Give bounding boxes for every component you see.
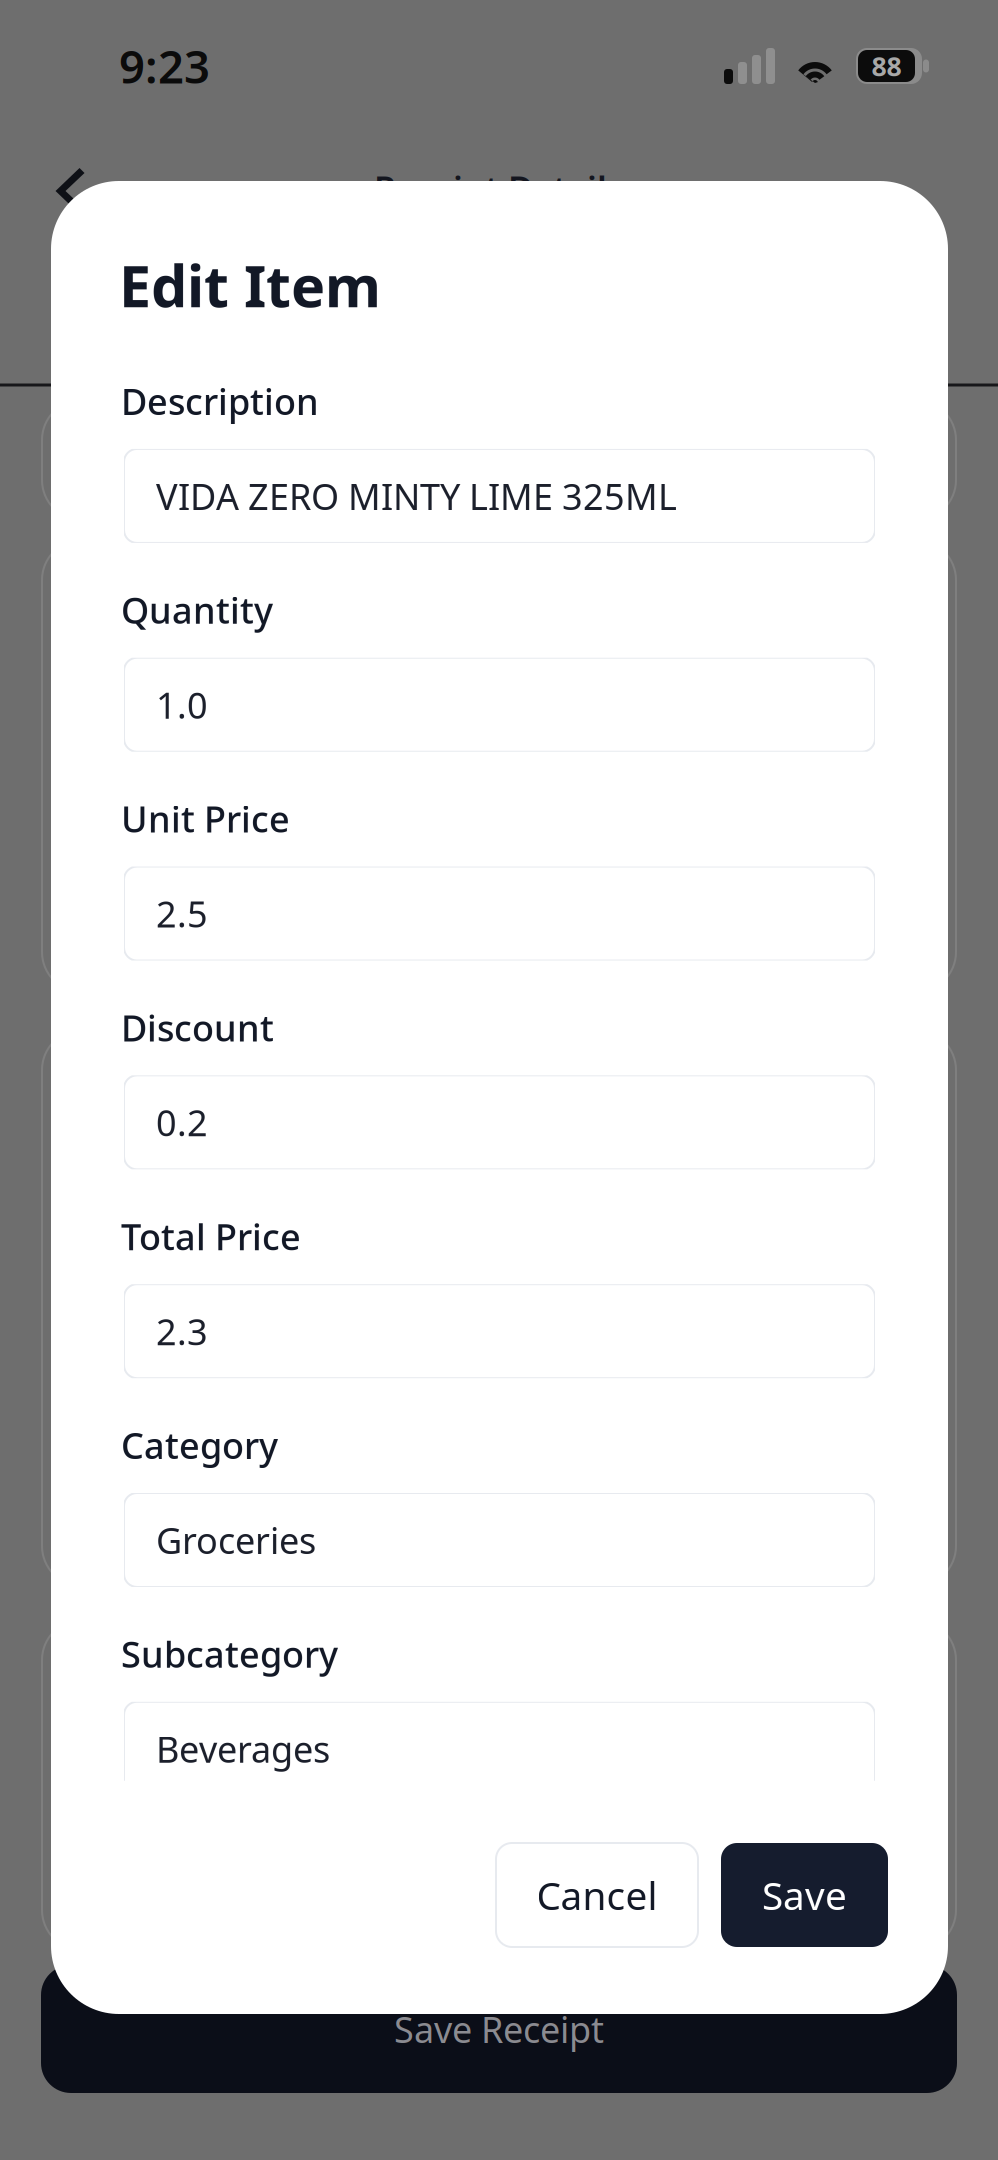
staticText: Beverages	[156, 1725, 330, 1773]
button[interactable]: Save	[721, 1843, 888, 1947]
staticText: Save Receipt	[394, 2005, 604, 2053]
staticText: Unit Price	[121, 795, 290, 842]
staticText: VIDA ZERO MINTY LIME 325ML	[156, 472, 677, 520]
staticText: Receipt Details	[374, 165, 624, 211]
staticText: 9:23	[119, 36, 210, 96]
button[interactable]: Back	[30, 151, 110, 231]
staticText: Subcategory	[121, 1630, 338, 1678]
staticText: Discount	[121, 1004, 274, 1051]
staticText: Description	[121, 377, 319, 425]
staticText: 2.3	[156, 1307, 208, 1355]
staticText: Category	[121, 1421, 278, 1469]
staticText: Cancel	[536, 1869, 657, 1921]
staticText: Save	[762, 1869, 847, 1921]
staticText: Edit Item	[119, 247, 381, 323]
staticText: 2.5	[156, 890, 208, 937]
staticText: 1.0	[156, 681, 208, 729]
staticText: 88	[871, 48, 901, 84]
staticText: Total Price	[121, 1212, 301, 1260]
staticText: 0.2	[156, 1098, 208, 1146]
staticText: Groceries	[156, 1516, 316, 1564]
button[interactable]: Cancel	[496, 1843, 698, 1947]
staticText: Quantity	[121, 586, 273, 634]
button[interactable]: Save Receipt	[41, 1965, 957, 2093]
